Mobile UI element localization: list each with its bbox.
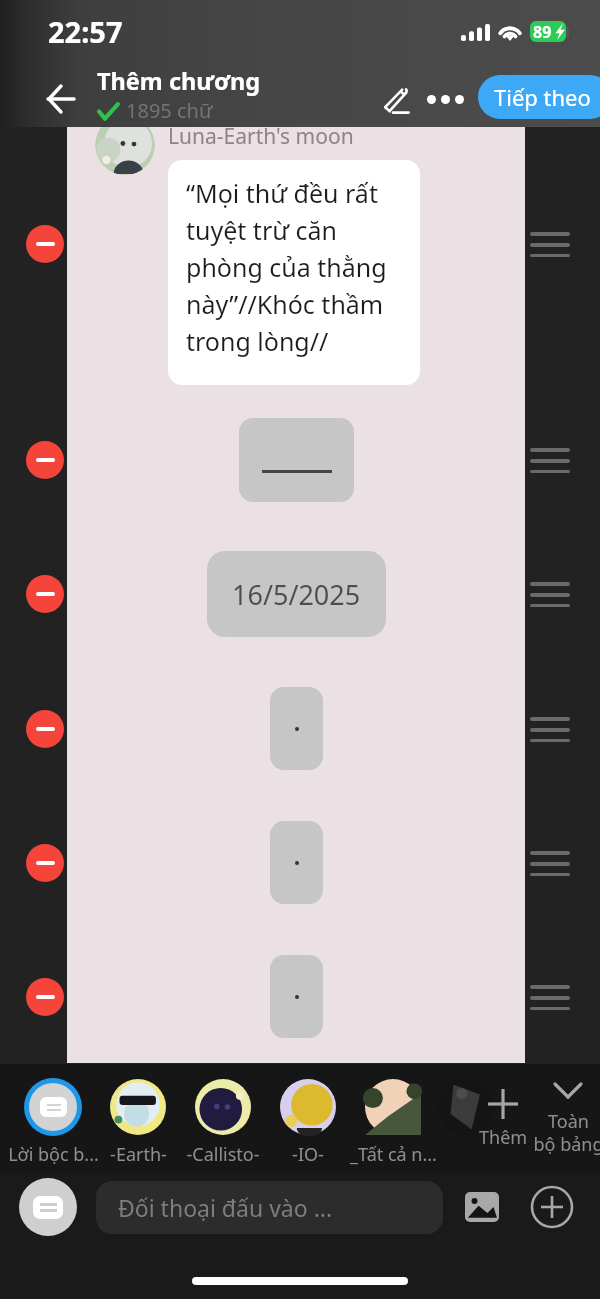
button[interactable]: Reorder: [530, 985, 570, 1010]
button[interactable]: Insert image: [460, 1185, 504, 1229]
staticText: “Mọi thứ đều rất tuyệt trừ căn phòng của…: [186, 176, 412, 358]
button[interactable]: Reorder: [530, 582, 570, 607]
button[interactable]: Remove: [26, 575, 64, 613]
button[interactable]: Back: [39, 77, 83, 121]
button[interactable]: Reorder: [530, 232, 570, 257]
staticText: Đối thoại đấu vào ...: [118, 1192, 333, 1223]
button[interactable]: -IO-: [258, 1078, 358, 1167]
staticText: Toàn bộ bảng: [533, 1109, 600, 1156]
button[interactable]: Thêm: [473, 1088, 533, 1150]
button[interactable]: [270, 821, 323, 904]
staticText: 1895 chữ: [126, 97, 213, 124]
button[interactable]: Reorder: [530, 448, 570, 473]
staticText: -IO-: [292, 1142, 324, 1167]
button[interactable]: Tiếp theo: [478, 75, 600, 119]
button[interactable]: Remove: [26, 225, 64, 263]
button[interactable]: 16/5/2025: [207, 551, 386, 637]
staticText: Thêm chương: [97, 65, 261, 97]
button[interactable]: Remove: [26, 710, 64, 748]
button[interactable]: [270, 687, 323, 770]
button[interactable]: “Mọi thứ đều rất tuyệt trừ căn phòng của…: [168, 160, 420, 385]
button[interactable]: Keyboard: [19, 1178, 77, 1236]
button[interactable]: -Callisto-: [173, 1078, 273, 1167]
button[interactable]: Reorder: [530, 717, 570, 742]
button[interactable]: _Tất cả n...: [343, 1078, 443, 1167]
staticText: _Tất cả n...: [350, 1142, 437, 1167]
staticText: 16/5/2025: [232, 576, 361, 613]
button[interactable]: Toàn bộ bảng: [524, 1080, 600, 1156]
staticText: Tiếp theo: [494, 82, 591, 112]
staticText: 22:57: [48, 12, 123, 51]
button[interactable]: Lời bộc b...: [3, 1078, 103, 1167]
button[interactable]: Remove: [26, 978, 64, 1016]
button[interactable]: Edit: [374, 78, 418, 122]
staticText: 89: [533, 21, 552, 42]
button[interactable]: -Earth-: [88, 1078, 188, 1167]
button[interactable]: Remove: [26, 844, 64, 882]
button[interactable]: More options: [418, 77, 473, 121]
button[interactable]: Remove: [26, 441, 64, 479]
button[interactable]: [270, 955, 323, 1038]
staticText: Thêm: [479, 1125, 528, 1150]
button[interactable]: [239, 418, 354, 502]
staticText: Lời bộc b...: [8, 1142, 99, 1167]
button[interactable]: Đối thoại đấu vào ...: [96, 1181, 443, 1234]
staticText: -Callisto-: [186, 1142, 260, 1167]
button[interactable]: Reorder: [530, 851, 570, 876]
button[interactable]: Add: [528, 1183, 576, 1231]
staticText: Luna-Earth's moon: [168, 122, 354, 151]
staticText: -Earth-: [110, 1142, 167, 1167]
